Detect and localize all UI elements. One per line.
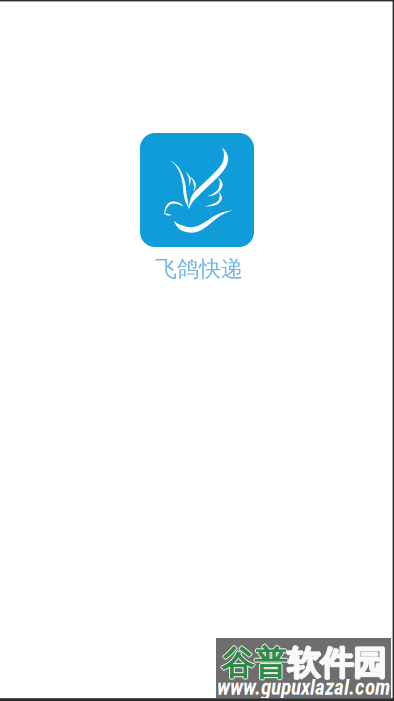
staticText: 谷普	[221, 643, 287, 685]
staticText: 软件园	[288, 642, 387, 684]
staticText: 谷普	[221, 642, 287, 684]
staticText: 飞鸽快递	[155, 255, 243, 283]
staticText: 谷普	[220, 642, 286, 684]
staticText: 软件园	[287, 643, 386, 685]
staticText: 软件园	[287, 642, 386, 684]
staticText: 谷普	[221, 641, 287, 683]
staticText: www.gupuxlazal.com	[217, 675, 390, 700]
staticText: 软件园	[287, 641, 386, 683]
staticText: 谷普	[222, 642, 288, 684]
staticText: 软件园	[286, 642, 385, 684]
